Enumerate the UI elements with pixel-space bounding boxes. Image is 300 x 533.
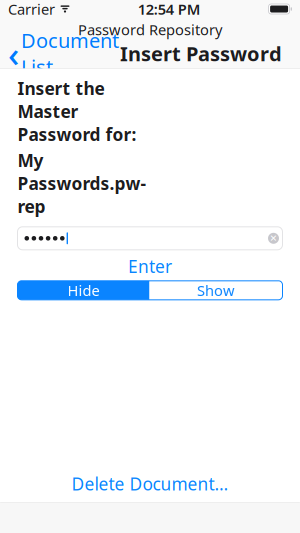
staticText: 12:54 PM: [138, 0, 201, 19]
staticText: Show: [197, 281, 235, 300]
staticText: Password Repository: [78, 20, 222, 39]
button[interactable]: Clear password: [264, 228, 282, 249]
button[interactable]: Show: [149, 281, 282, 300]
button[interactable]: Delete Document…: [0, 465, 300, 502]
staticText: Enter: [128, 255, 172, 278]
staticText: Insert Password: [120, 40, 282, 67]
button[interactable]: Hide: [17, 281, 149, 300]
staticText: Insert the Master Password for:: [17, 77, 136, 146]
staticText: Hide: [67, 281, 99, 300]
staticText: Delete Document…: [71, 472, 228, 495]
staticText: ✕: [269, 233, 277, 244]
staticText: Document List: [21, 27, 119, 80]
button[interactable]: ‹: [0, 41, 120, 65]
staticText: My Passwords.pwrep: [17, 149, 146, 218]
staticText: ‹: [8, 30, 19, 76]
button[interactable]: Enter: [17, 256, 282, 277]
staticText: Carrier: [8, 0, 55, 19]
